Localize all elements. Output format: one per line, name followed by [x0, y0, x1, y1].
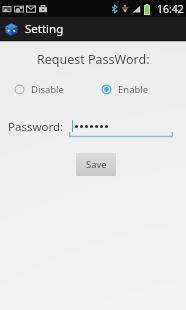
button[interactable]: Enable [93, 80, 186, 99]
staticText: Enable [118, 83, 149, 96]
button[interactable]: Save [76, 153, 116, 176]
staticText: Disable [31, 83, 64, 96]
staticText: Save [86, 158, 107, 171]
staticText: Setting [25, 21, 64, 37]
button[interactable]: Disable [0, 80, 93, 99]
staticText: Request PassWord: [37, 51, 150, 68]
staticText: Password: [8, 119, 64, 135]
button[interactable]: Password input [69, 116, 173, 138]
staticText: 16:42 [157, 2, 184, 16]
